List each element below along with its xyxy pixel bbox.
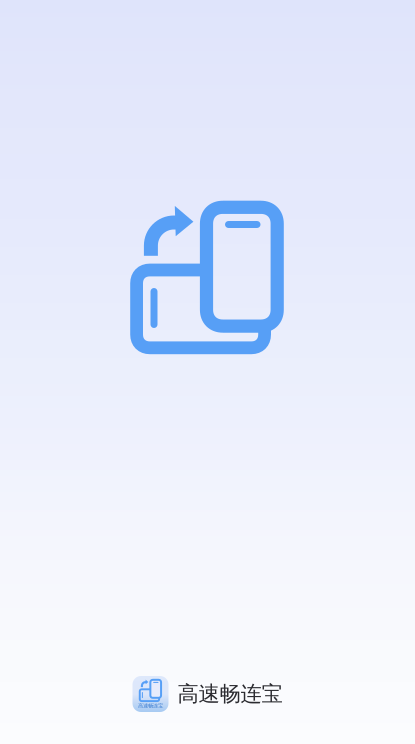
staticText: 高速畅连宝 <box>177 681 282 707</box>
staticText: 高速畅连宝 <box>138 702 163 709</box>
